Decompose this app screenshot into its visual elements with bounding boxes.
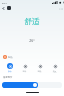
button[interactable]: 制热 xyxy=(3,54,61,60)
staticText: 舒适 xyxy=(0,17,64,27)
button[interactable]: More options xyxy=(58,6,63,11)
staticText: 温度调节 xyxy=(3,76,13,79)
staticText: 自动 xyxy=(2,70,17,72)
staticText: 制冷 xyxy=(17,70,32,72)
button[interactable]: 送风 xyxy=(47,63,62,72)
staticText: 26° xyxy=(0,38,64,43)
staticText: 送风 xyxy=(47,70,62,72)
button[interactable]: Back xyxy=(1,6,6,11)
button[interactable]: 自动 xyxy=(2,63,17,72)
staticText: 制热 xyxy=(32,70,47,72)
staticText: 9:41 xyxy=(2,1,7,4)
button[interactable]: 制热 xyxy=(32,63,47,72)
staticText: 制热 xyxy=(8,56,13,59)
button[interactable]: Device xyxy=(7,6,11,10)
button[interactable] xyxy=(2,82,62,88)
button[interactable]: 制冷 xyxy=(17,63,32,72)
